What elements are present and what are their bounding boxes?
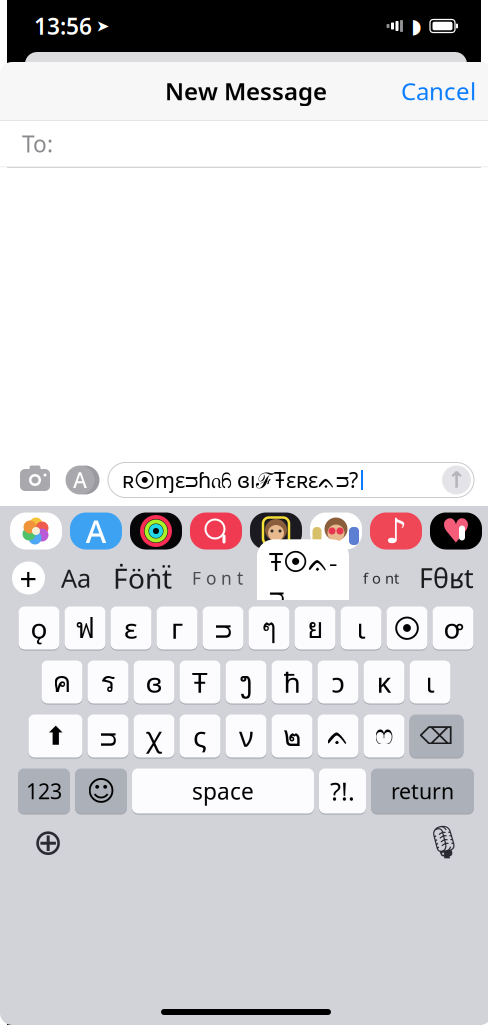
- button[interactable]: Cancel: [385, 65, 488, 117]
- button[interactable]: Image Search: [190, 512, 242, 549]
- button[interactable]: space: [132, 768, 314, 814]
- staticText: ɔ: [331, 663, 344, 701]
- staticText: Ŧ⦿ᨊᴝ: [269, 544, 337, 612]
- staticText: ?!.: [330, 774, 355, 808]
- button[interactable]: ɞ: [133, 660, 174, 704]
- button[interactable]: ς: [179, 714, 220, 758]
- button[interactable]: κ: [363, 660, 404, 704]
- button[interactable]: ฟ: [64, 606, 105, 650]
- staticText: return: [391, 777, 454, 805]
- staticText: F o n t: [192, 566, 243, 589]
- staticText: Cancel: [401, 75, 476, 107]
- button[interactable]: ν: [225, 714, 266, 758]
- button[interactable]: Ḟöṅẗ: [107, 553, 178, 603]
- staticText: ᨊ: [326, 722, 349, 750]
- button[interactable]: ร: [87, 660, 128, 704]
- staticText: ➤: [96, 17, 109, 35]
- button[interactable]: ๒: [271, 714, 312, 758]
- staticText: ʀ⦿ɱɛᴝɦᦵᦆ ɞıℱŦɛʀɛᨊᴝ?: [122, 466, 358, 494]
- button[interactable]: Memoji Stickers: [310, 512, 362, 549]
- staticText: ᴝ: [214, 609, 231, 647]
- staticText: ħ: [283, 663, 300, 701]
- button[interactable]: 123: [18, 768, 70, 814]
- button[interactable]: return: [371, 768, 474, 814]
- staticText: ค: [52, 660, 71, 704]
- staticText: 13:56: [34, 11, 92, 41]
- button[interactable]: Add: [12, 558, 45, 598]
- button[interactable]: ค: [41, 660, 82, 704]
- button[interactable]: ງ: [225, 660, 266, 704]
- staticText: Fθʁt: [419, 560, 474, 596]
- staticText: To:: [22, 129, 53, 159]
- button[interactable]: Camera: [18, 466, 52, 494]
- button[interactable]: χ: [133, 714, 174, 758]
- button[interactable]: ෆ: [363, 714, 404, 758]
- staticText: ๆ: [261, 606, 276, 650]
- staticText: ꝍ: [443, 609, 462, 647]
- staticText: ⌫: [419, 722, 453, 750]
- staticText: Aa: [61, 561, 91, 595]
- button[interactable]: ᴦ: [156, 606, 197, 650]
- button[interactable]: Fθʁt: [413, 554, 480, 602]
- staticText: A: [73, 466, 87, 494]
- button[interactable]: Digital Touch: [430, 512, 482, 550]
- staticText: ร: [100, 660, 115, 704]
- button[interactable]: Ŧ: [179, 660, 220, 704]
- button[interactable]: ι: [409, 660, 450, 704]
- staticText: ⦿: [393, 614, 421, 642]
- staticText: ◗: [411, 15, 422, 37]
- button[interactable]: Photos: [10, 512, 62, 549]
- staticText: ☺: [86, 775, 115, 807]
- button[interactable]: ǫ: [18, 606, 59, 650]
- staticText: space: [192, 776, 254, 806]
- button[interactable]: ꝍ: [432, 606, 473, 650]
- button[interactable]: f o nt: [357, 562, 405, 594]
- staticText: Ḟöṅẗ: [113, 559, 172, 597]
- button[interactable]: Apps: [63, 465, 97, 494]
- button[interactable]: Memoji: [250, 512, 302, 549]
- staticText: +: [19, 558, 37, 598]
- button[interactable]: ☺: [75, 768, 127, 814]
- button[interactable]: Aa: [53, 555, 99, 601]
- button[interactable]: ɔ: [317, 660, 358, 704]
- button[interactable]: Music: [370, 511, 422, 551]
- staticText: ♥: [441, 512, 471, 550]
- staticText: ๒: [283, 714, 301, 758]
- staticText: ɞ: [145, 663, 162, 701]
- staticText: 🎙: [423, 824, 464, 860]
- staticText: ι: [356, 609, 365, 647]
- button[interactable]: ᴝ: [87, 714, 128, 758]
- staticText: ɛ: [124, 609, 138, 647]
- button[interactable]: ɛ: [110, 606, 151, 650]
- staticText: New Message: [165, 75, 327, 107]
- button[interactable]: ⌫: [409, 714, 463, 758]
- staticText: ฟ: [75, 606, 95, 650]
- button[interactable]: ⬆: [28, 714, 82, 758]
- staticText: ς: [193, 717, 207, 755]
- staticText: ງ: [239, 666, 253, 698]
- button[interactable]: ?!.: [319, 768, 366, 814]
- staticText: χ: [145, 717, 162, 755]
- button[interactable]: ⦿: [386, 606, 427, 650]
- button[interactable]: F o n t: [186, 560, 249, 595]
- staticText: ᴝ: [99, 717, 116, 755]
- button[interactable]: App Store: [70, 510, 122, 552]
- button[interactable]: Ŧ⦿ᨊᴝ: [257, 539, 349, 617]
- staticText: ෆ: [374, 722, 393, 750]
- staticText: Ŧ: [192, 663, 208, 701]
- button[interactable]: Dictate: [422, 822, 466, 862]
- staticText: ι: [425, 663, 434, 701]
- staticText: ↑: [447, 467, 466, 493]
- staticText: ǫ: [30, 609, 47, 647]
- button[interactable]: ๆ: [248, 606, 289, 650]
- button[interactable]: ᨊ: [317, 714, 358, 758]
- button[interactable]: ι: [340, 606, 381, 650]
- button[interactable]: Next keyboard: [26, 822, 70, 862]
- button[interactable]: Fitness: [130, 512, 182, 549]
- staticText: 123: [26, 777, 62, 805]
- staticText: ย: [307, 606, 323, 650]
- button[interactable]: ᴝ: [202, 606, 243, 650]
- staticText: ᴦ: [171, 609, 183, 647]
- button[interactable]: ย: [294, 606, 335, 650]
- button[interactable]: ħ: [271, 660, 312, 704]
